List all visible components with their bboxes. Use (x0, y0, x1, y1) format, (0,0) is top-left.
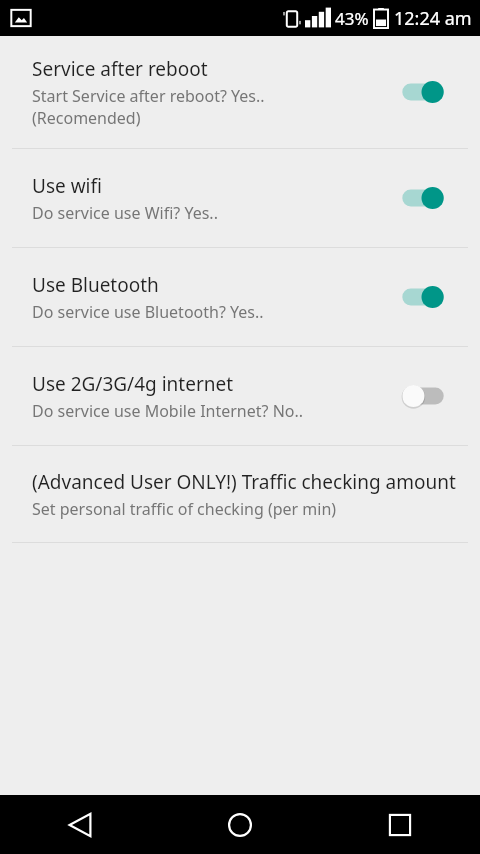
button[interactable]: (Advanced User ONLY!) Traffic checking a… (0, 446, 480, 542)
button[interactable]: Use 2G/3G/4g internet (0, 347, 480, 445)
staticText: (Advanced User ONLY!) Traffic checking a… (32, 469, 456, 495)
button[interactable]: Back (0, 795, 160, 854)
staticText: Set personal traffic of checking (per mi… (32, 498, 337, 520)
button[interactable]: Toggle on (400, 183, 446, 213)
staticText: Do service use Wifi? Yes.. (32, 202, 218, 224)
staticText: Service after reboot (32, 56, 208, 82)
button[interactable]: Home (160, 795, 320, 854)
button[interactable]: Use wifi (0, 149, 480, 247)
staticText: Do service use Mobile Internet? No.. (32, 400, 304, 422)
staticText: Use Bluetooth (32, 272, 159, 298)
button[interactable]: Service after reboot (0, 36, 480, 148)
button[interactable]: Toggle on (400, 282, 446, 312)
staticText: Use wifi (32, 173, 102, 199)
button[interactable]: Toggle off (400, 381, 446, 411)
staticText: Do service use Bluetooth? Yes.. (32, 301, 264, 323)
staticText: Use 2G/3G/4g internet (32, 371, 234, 397)
staticText: Start Service after reboot? Yes.. (Recom… (32, 85, 265, 129)
staticText: 43% (335, 7, 369, 30)
button[interactable]: Recent apps (320, 795, 480, 854)
button[interactable]: Use Bluetooth (0, 248, 480, 346)
staticText: 12:24 am (394, 6, 472, 31)
button[interactable]: Toggle on (400, 77, 446, 107)
